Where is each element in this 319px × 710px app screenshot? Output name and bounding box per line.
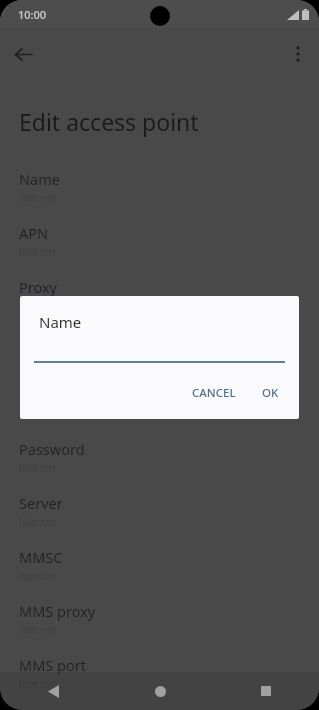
button[interactable]: MMSC xyxy=(0,539,319,593)
button[interactable]: MMS port xyxy=(0,647,319,701)
staticText: Not set xyxy=(19,352,57,367)
button[interactable]: Navigate up xyxy=(6,37,40,71)
staticText: Server xyxy=(19,493,63,513)
staticText: APN xyxy=(19,223,49,243)
button[interactable]: Proxy xyxy=(0,269,319,323)
button[interactable]: More options xyxy=(281,37,315,71)
button[interactable]: Password xyxy=(0,431,319,485)
staticText: MMSC xyxy=(19,547,63,567)
staticText: Not set xyxy=(19,514,57,529)
button[interactable]: CANCEL xyxy=(182,379,246,407)
staticText: Name xyxy=(19,169,60,189)
staticText: Name xyxy=(39,312,82,332)
button[interactable]: Recent apps xyxy=(213,672,319,710)
staticText: MMS proxy xyxy=(19,601,96,621)
staticText: Not set xyxy=(19,622,57,637)
button[interactable]: Home xyxy=(107,672,213,710)
staticText: Not set xyxy=(19,190,57,205)
staticText: Port xyxy=(19,331,48,351)
staticText: Not set xyxy=(19,460,57,475)
button[interactable]: Port xyxy=(0,323,319,377)
button[interactable]: Username xyxy=(0,377,319,431)
staticText: MMS port xyxy=(19,655,86,675)
staticText: 10:00 xyxy=(18,7,47,22)
staticText: Not set xyxy=(19,568,57,583)
button[interactable]: MMS proxy xyxy=(0,593,319,647)
button[interactable]: Back xyxy=(0,672,107,710)
staticText: Password xyxy=(19,439,85,459)
staticText: OK xyxy=(262,385,279,401)
button[interactable]: OK xyxy=(252,379,289,407)
staticText: CANCEL xyxy=(192,385,236,401)
staticText: Not set xyxy=(19,244,57,259)
staticText: Not set xyxy=(19,676,57,691)
staticText: Not set xyxy=(19,298,57,313)
staticText: Proxy xyxy=(19,277,58,297)
staticText: Not set xyxy=(19,406,57,421)
staticText: Username xyxy=(19,385,90,405)
staticText: Edit access point xyxy=(19,106,199,137)
